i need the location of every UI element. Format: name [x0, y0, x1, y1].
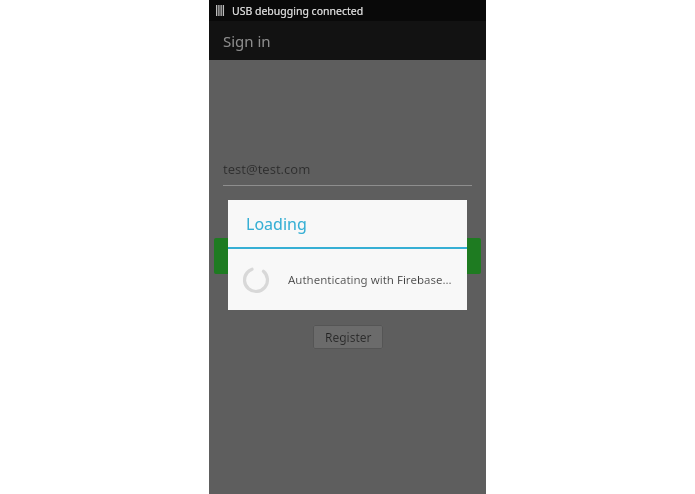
button[interactable] — [214, 238, 481, 274]
button[interactable]: Register — [313, 325, 383, 349]
staticText: Sign in — [223, 31, 271, 51]
staticText: USB debugging connected — [232, 4, 364, 18]
staticText: Authenticating with Firebase... — [288, 272, 452, 288]
staticText: Register — [325, 329, 372, 345]
staticText: Loading — [246, 213, 307, 235]
staticText: test@test.com — [223, 160, 311, 178]
